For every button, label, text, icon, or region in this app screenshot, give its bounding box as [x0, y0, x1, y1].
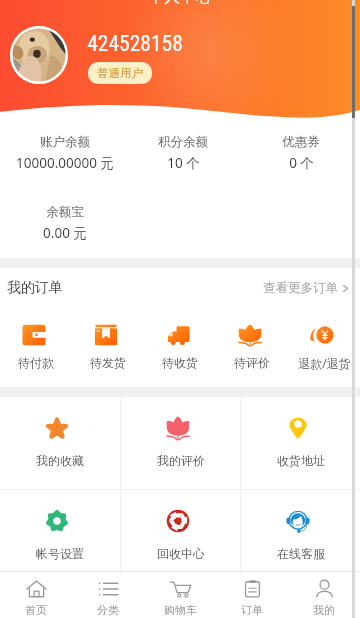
staticText: 10000.00000 元 — [16, 154, 114, 172]
staticText: 购物车 — [164, 603, 197, 617]
button[interactable]: 分类 — [72, 572, 144, 618]
staticText: 优惠券 — [282, 134, 320, 150]
staticText: 0 个 — [289, 154, 314, 172]
staticText: 普通用户 — [97, 66, 143, 80]
staticText: 分类 — [97, 603, 119, 617]
button[interactable]: 在线客服 — [241, 490, 360, 571]
staticText: 我的收藏 — [36, 453, 84, 468]
staticText: 查看更多订单 — [263, 280, 338, 296]
button[interactable]: 退款/退货 — [288, 324, 360, 371]
staticText: 10 个 — [167, 154, 200, 172]
staticText: 退款/退货 — [298, 355, 351, 371]
button[interactable]: 我的收藏 — [0, 397, 120, 489]
staticText: 积分余额 — [158, 134, 208, 150]
button[interactable]: 待付款 — [0, 324, 72, 370]
button[interactable]: 优惠券 — [242, 134, 360, 172]
button[interactable]: 普通用户 — [88, 62, 152, 84]
staticText: 收货地址 — [277, 453, 325, 468]
staticText: 个人中心 — [148, 0, 212, 7]
staticText: 订单 — [241, 603, 263, 617]
button[interactable]: 购物车 — [144, 572, 216, 618]
button[interactable]: 帐号设置 — [0, 490, 120, 571]
staticText: 424528158 — [87, 31, 183, 56]
staticText: 我的评价 — [157, 453, 205, 468]
button[interactable]: 待评价 — [216, 324, 288, 370]
button[interactable]: 积分余额 — [124, 134, 242, 172]
staticText: 待评价 — [234, 355, 270, 370]
staticText: 账户余额 — [40, 134, 90, 150]
button[interactable]: 余额宝 — [6, 204, 124, 242]
staticText: 待付款 — [18, 355, 54, 370]
staticText: 我的订单 — [7, 279, 63, 297]
button[interactable]: 我的评价 — [121, 397, 240, 489]
staticText: 待发货 — [90, 355, 126, 370]
button[interactable]: 我的 — [288, 572, 360, 618]
button[interactable]: 收货地址 — [241, 397, 360, 489]
staticText: 0.00 元 — [43, 224, 87, 242]
button[interactable]: 回收中心 — [121, 490, 240, 571]
staticText: 我的 — [313, 603, 335, 617]
staticText: 在线客服 — [277, 546, 325, 561]
staticText: 首页 — [25, 603, 47, 617]
staticText: 余额宝 — [46, 204, 84, 220]
staticText: 待收货 — [162, 355, 198, 370]
button[interactable]: 订单 — [216, 572, 288, 618]
button[interactable]: Avatar — [10, 26, 68, 84]
button[interactable]: 我的订单 — [0, 268, 360, 308]
button[interactable]: 待收货 — [144, 324, 216, 370]
staticText: 回收中心 — [157, 546, 205, 561]
button[interactable]: 待发货 — [72, 324, 144, 370]
button[interactable]: 首页 — [0, 572, 72, 618]
button[interactable]: 账户余额 — [6, 134, 124, 172]
staticText: 帐号设置 — [36, 546, 84, 561]
